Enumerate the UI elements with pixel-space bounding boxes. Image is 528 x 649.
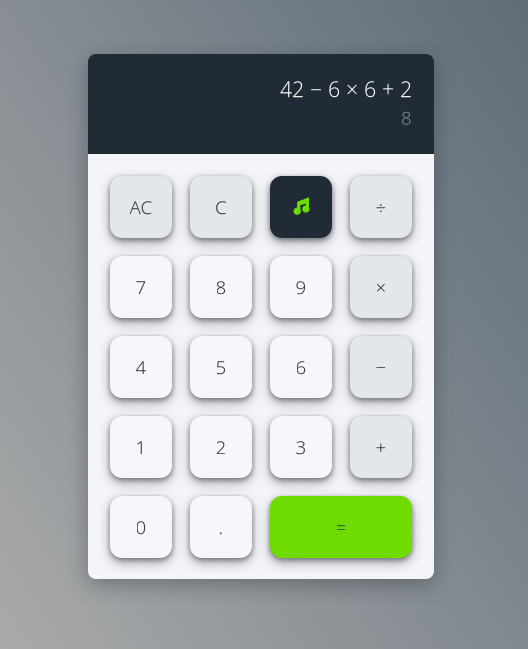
staticText: 8: [401, 105, 412, 130]
staticText: 0: [135, 515, 146, 539]
button[interactable]: 4: [110, 336, 172, 398]
staticText: ×: [375, 275, 386, 299]
staticText: +: [375, 435, 386, 459]
button[interactable]: 8: [190, 256, 252, 318]
staticText: AC: [129, 195, 152, 219]
staticText: −: [375, 355, 386, 379]
button[interactable]: .: [190, 496, 252, 558]
button[interactable]: Sound: [270, 176, 332, 238]
staticText: 2: [215, 435, 226, 459]
button[interactable]: +: [350, 416, 412, 478]
button[interactable]: 1: [110, 416, 172, 478]
staticText: 4: [135, 355, 146, 379]
button[interactable]: 6: [270, 336, 332, 398]
button[interactable]: ×: [350, 256, 412, 318]
staticText: 6: [295, 355, 306, 379]
button[interactable]: C: [190, 176, 252, 238]
staticText: 7: [135, 275, 146, 299]
staticText: C: [215, 195, 227, 219]
button[interactable]: AC: [110, 176, 172, 238]
button[interactable]: 9: [270, 256, 332, 318]
staticText: 9: [295, 275, 306, 299]
staticText: ÷: [375, 195, 386, 219]
staticText: 42 − 6 × 6 + 2: [280, 75, 412, 103]
staticText: 3: [295, 435, 306, 459]
staticText: =: [335, 515, 346, 539]
button[interactable]: =: [270, 496, 412, 558]
staticText: 5: [215, 355, 226, 379]
button[interactable]: 0: [110, 496, 172, 558]
button[interactable]: 7: [110, 256, 172, 318]
button[interactable]: 2: [190, 416, 252, 478]
staticText: 8: [215, 275, 226, 299]
staticText: 1: [135, 435, 146, 459]
button[interactable]: 3: [270, 416, 332, 478]
button[interactable]: 5: [190, 336, 252, 398]
button[interactable]: ÷: [350, 176, 412, 238]
button[interactable]: −: [350, 336, 412, 398]
staticText: .: [218, 515, 223, 539]
